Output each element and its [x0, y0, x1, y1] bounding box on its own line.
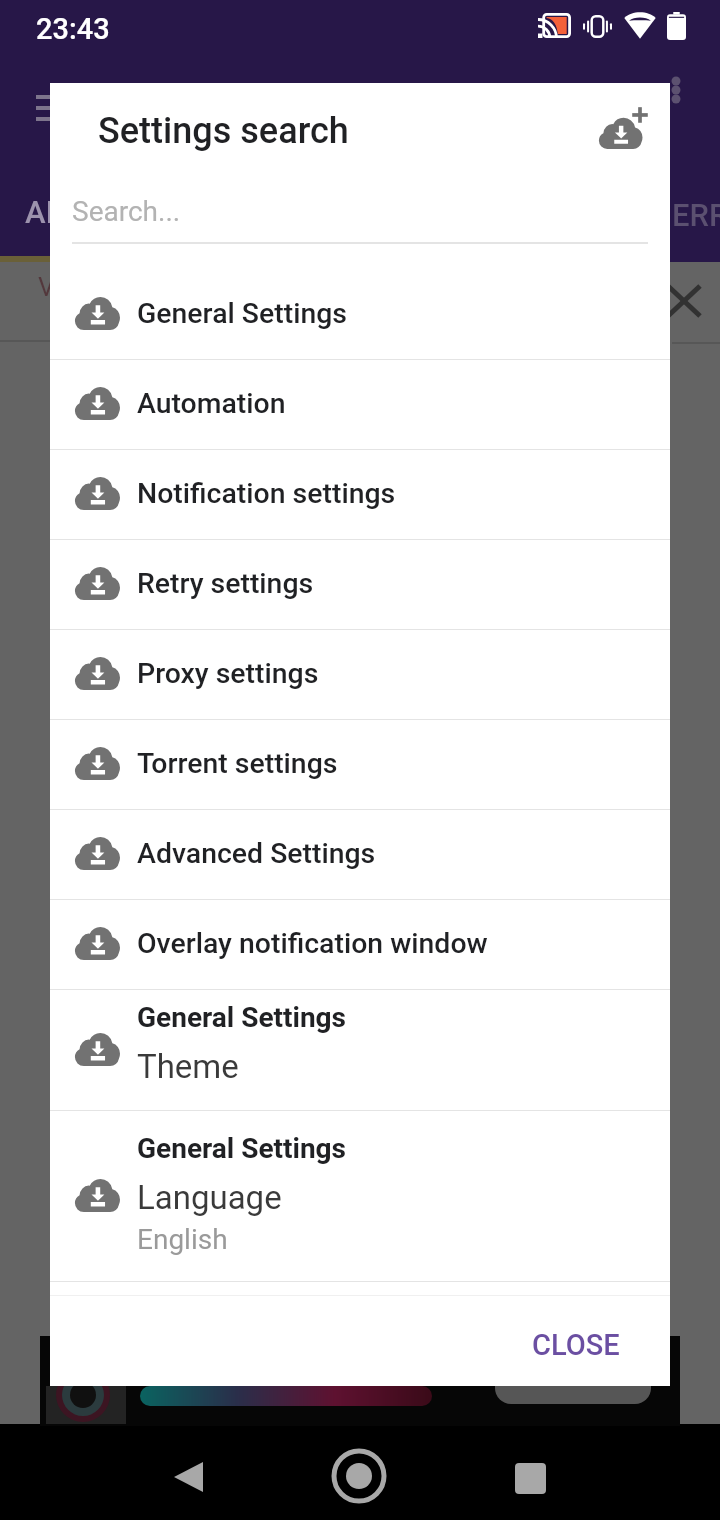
button[interactable]: Add download: [580, 85, 666, 171]
staticText: Search...: [72, 195, 181, 228]
button[interactable]: Proxy settings: [50, 630, 670, 719]
button[interactable]: Recents: [498, 1446, 562, 1510]
button[interactable]: Notification settings: [50, 450, 670, 539]
button[interactable]: General Settings: [50, 990, 670, 1110]
staticText: Retry settings: [137, 567, 314, 600]
button[interactable]: Automation: [50, 360, 670, 449]
button[interactable]: Retry settings: [50, 540, 670, 629]
staticText: General Settings: [137, 1132, 347, 1165]
button[interactable]: Advanced Settings: [50, 810, 670, 899]
button[interactable]: Overlay notification window: [50, 900, 670, 989]
staticText: ALL: [25, 194, 80, 230]
staticText: General Settings: [137, 1001, 347, 1034]
staticText: General Settings: [137, 297, 347, 330]
staticText: ERR: [672, 197, 720, 233]
staticText: CLOSE: [532, 1328, 620, 1362]
staticText: Automation: [137, 387, 286, 420]
staticText: 23:43: [36, 12, 110, 46]
button[interactable]: Torrent settings: [50, 720, 670, 809]
button[interactable]: General Settings: [50, 270, 670, 359]
button[interactable]: General Settings: [50, 1111, 670, 1281]
staticText: Notification settings: [137, 477, 396, 510]
staticText: Proxy settings: [137, 657, 319, 690]
staticText: V: [38, 272, 55, 302]
button[interactable]: CLOSE: [516, 1305, 636, 1385]
staticText: Overlay notification window: [137, 927, 488, 960]
button[interactable]: Home: [327, 1444, 391, 1508]
staticText: Torrent settings: [137, 747, 338, 780]
staticText: English: [137, 1223, 228, 1256]
staticText: Settings search: [98, 110, 349, 152]
staticText: Theme: [137, 1047, 239, 1086]
button[interactable]: Back: [156, 1445, 220, 1509]
staticText: Advanced Settings: [137, 837, 376, 870]
staticText: Language: [137, 1178, 282, 1217]
